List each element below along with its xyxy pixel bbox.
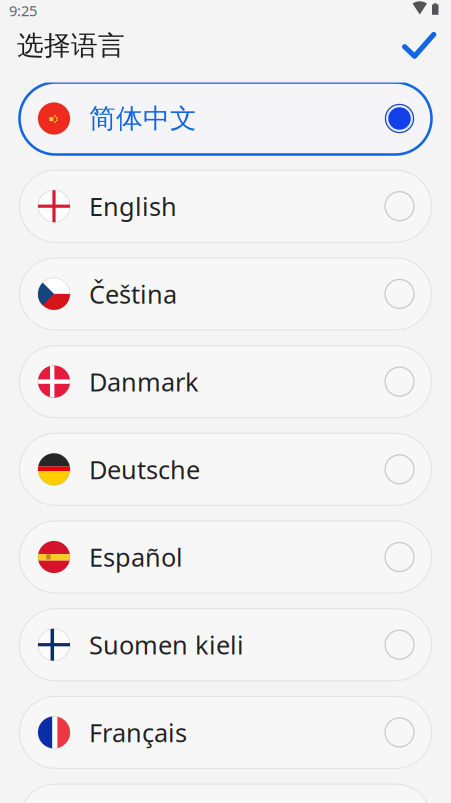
button[interactable]: Español <box>19 521 431 593</box>
staticText: 简体中文 <box>89 102 197 135</box>
button[interactable]: English <box>19 170 431 242</box>
staticText: English <box>89 189 177 223</box>
button[interactable]: Deutsche <box>19 433 431 505</box>
button[interactable]: 简体中文 <box>19 82 431 154</box>
staticText: Deutsche <box>89 452 200 486</box>
staticText: Español <box>89 540 183 574</box>
staticText: 选择语言 <box>17 29 125 62</box>
button[interactable]: Italiano <box>19 784 431 803</box>
staticText: 9:25 <box>9 1 37 20</box>
button[interactable]: Confirm <box>391 21 451 70</box>
button[interactable]: Danmark <box>19 346 431 418</box>
button[interactable]: Suomen kieli <box>19 609 431 681</box>
button[interactable]: Čeština <box>19 258 431 330</box>
staticText: Français <box>89 716 187 749</box>
staticText: Suomen kieli <box>89 628 244 661</box>
staticText: Danmark <box>89 365 199 398</box>
staticText: Čeština <box>89 277 177 311</box>
button[interactable]: Français <box>19 696 431 768</box>
